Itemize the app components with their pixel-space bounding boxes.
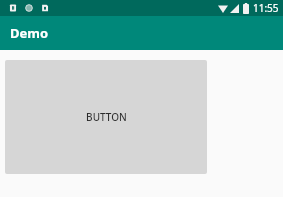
button[interactable]: BUTTON xyxy=(5,60,207,174)
staticText: BUTTON xyxy=(86,110,127,124)
staticText: 11:55 xyxy=(253,1,279,15)
staticText: Demo xyxy=(10,24,49,42)
